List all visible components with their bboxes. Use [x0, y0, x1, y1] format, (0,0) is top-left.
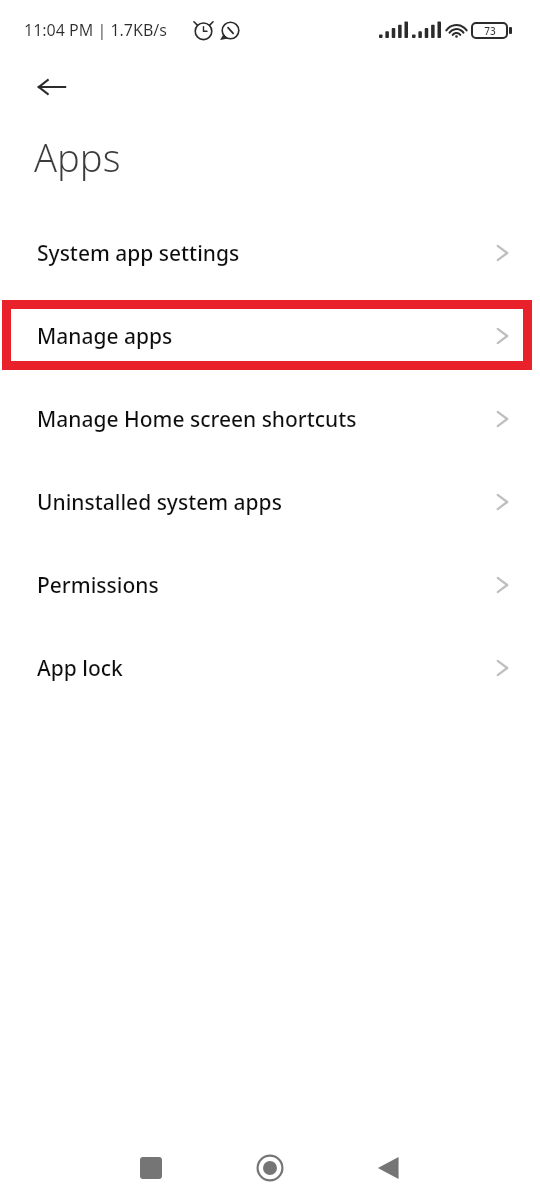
staticText: App lock: [37, 654, 123, 683]
button[interactable]: App lock: [0, 633, 540, 703]
staticText: Manage Home screen shortcuts: [37, 405, 357, 434]
staticText: System app settings: [37, 239, 240, 268]
staticText: Manage apps: [37, 322, 173, 351]
button[interactable]: System app settings: [0, 218, 540, 288]
button[interactable]: Manage Home screen shortcuts: [0, 384, 540, 454]
button[interactable]: Back: [26, 61, 78, 113]
button[interactable]: Uninstalled system apps: [0, 467, 540, 537]
staticText: Apps: [34, 131, 121, 183]
staticText: 11:04 PM | 1.7KB/s: [24, 19, 167, 41]
button[interactable]: Permissions: [0, 550, 540, 620]
button[interactable]: Home: [246, 1144, 294, 1192]
staticText: Uninstalled system apps: [37, 488, 282, 517]
staticText: Permissions: [37, 571, 159, 600]
button[interactable]: Recent apps: [127, 1144, 175, 1192]
button[interactable]: Back: [364, 1144, 412, 1192]
staticText: 73: [484, 24, 496, 38]
button[interactable]: Manage apps: [0, 301, 540, 371]
